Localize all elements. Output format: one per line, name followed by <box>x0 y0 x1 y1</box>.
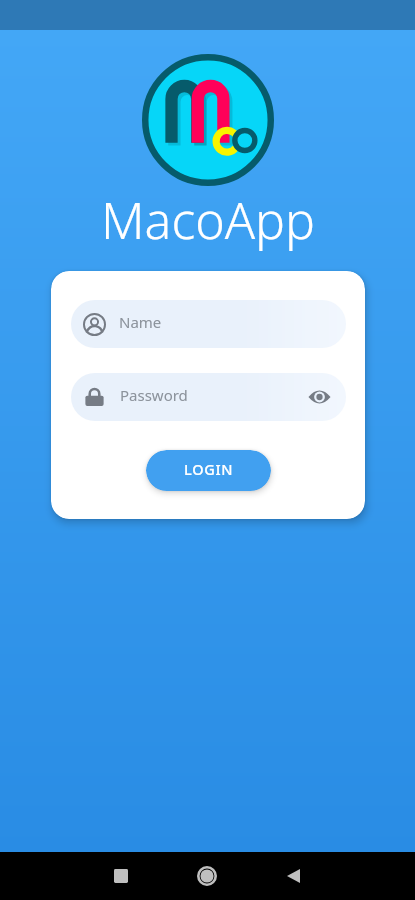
button[interactable]: Recents <box>97 852 145 900</box>
staticText: LOGIN <box>184 459 234 479</box>
staticText: MacoApp <box>101 186 315 254</box>
button[interactable]: Name <box>71 300 346 348</box>
staticText: Name <box>119 312 162 332</box>
staticText: Password <box>120 385 188 405</box>
button[interactable]: Back <box>269 852 317 900</box>
button[interactable]: Show password <box>306 384 332 410</box>
button[interactable]: Home <box>183 852 231 900</box>
button[interactable]: LOGIN <box>146 450 271 491</box>
button[interactable]: Password <box>71 373 346 421</box>
